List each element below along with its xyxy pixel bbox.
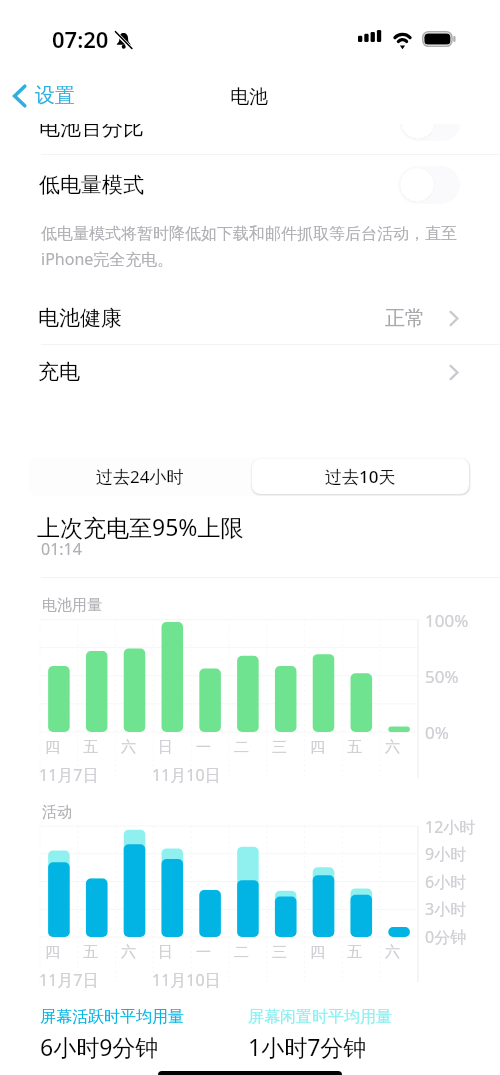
button[interactable]: 电池健康: [0, 292, 500, 344]
staticText: 电池: [230, 85, 268, 109]
staticText: 充电: [38, 359, 80, 385]
staticText: 三: [272, 943, 287, 962]
staticText: 日: [158, 943, 173, 962]
staticText: 活动: [42, 803, 72, 822]
staticText: 过去24小时: [96, 465, 184, 488]
staticText: 50%: [425, 665, 459, 688]
staticText: 正常: [385, 306, 425, 331]
staticText: 日: [158, 738, 173, 757]
staticText: 11月10日: [152, 969, 221, 991]
staticText: 电池用量: [42, 596, 102, 615]
staticText: 6小时9分钟: [40, 1031, 159, 1062]
staticText: 一: [196, 943, 211, 962]
staticText: 一: [196, 738, 211, 757]
staticText: 六: [385, 943, 400, 962]
staticText: 上次充电至95%上限: [37, 511, 244, 542]
staticText: 五: [347, 738, 362, 757]
staticText: 屏幕闲置时平均用量: [248, 1007, 392, 1027]
staticText: 过去10天: [325, 465, 396, 488]
staticText: 屏幕活跃时平均用量: [40, 1007, 184, 1027]
staticText: 12小时: [425, 816, 476, 838]
button[interactable]: Back to 设置: [6, 80, 81, 111]
staticText: 六: [121, 738, 136, 757]
staticText: 二: [234, 943, 249, 962]
staticText: 11月7日: [39, 764, 99, 786]
staticText: 六: [121, 943, 136, 962]
staticText: 100%: [425, 609, 469, 632]
button[interactable]: 过去24小时: [29, 457, 250, 496]
staticText: 电池健康: [38, 305, 122, 331]
button[interactable]: 过去10天: [252, 459, 469, 494]
staticText: 6小时: [425, 871, 467, 893]
staticText: 11月10日: [152, 764, 221, 786]
staticText: 3小时: [425, 898, 467, 920]
staticText: 五: [83, 943, 98, 962]
staticText: 四: [310, 738, 325, 757]
staticText: 三: [272, 738, 287, 757]
staticText: 9小时: [425, 843, 467, 865]
staticText: 0分钟: [425, 926, 467, 948]
staticText: 01:14: [41, 538, 82, 560]
staticText: 低电量模式: [39, 172, 144, 198]
button[interactable]: 屏幕闲置时平均用量: [248, 1007, 392, 1058]
button[interactable]: 充电: [0, 346, 500, 398]
staticText: 五: [83, 738, 98, 757]
staticText: 07:20: [52, 24, 109, 54]
staticText: 四: [45, 738, 60, 757]
staticText: 四: [310, 943, 325, 962]
staticText: 五: [347, 943, 362, 962]
staticText: 二: [234, 738, 249, 757]
staticText: 六: [385, 738, 400, 757]
staticText: 0%: [425, 721, 449, 744]
staticText: 1小时7分钟: [248, 1031, 367, 1062]
staticText: 电池百分比: [39, 115, 144, 141]
staticText: 四: [45, 943, 60, 962]
button[interactable]: 屏幕活跃时平均用量: [40, 1007, 184, 1058]
staticText: 设置: [35, 83, 75, 108]
staticText: 低电量模式将暂时降低如下载和邮件抓取等后台活动，直至 iPhone完全充电。: [41, 222, 461, 269]
button[interactable]: 低电量模式: [0, 155, 500, 215]
staticText: 11月7日: [39, 969, 99, 991]
